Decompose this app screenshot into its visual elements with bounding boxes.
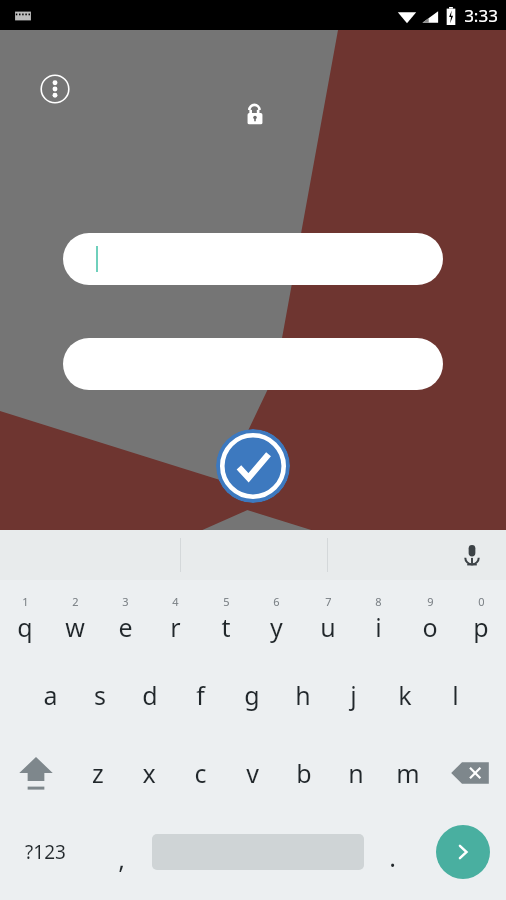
staticText: q bbox=[17, 610, 33, 644]
staticText: i bbox=[375, 610, 382, 644]
button[interactable]: Enter bbox=[436, 825, 490, 879]
button[interactable]: 7 bbox=[302, 582, 353, 656]
button[interactable]: . bbox=[364, 812, 420, 892]
button[interactable] bbox=[63, 338, 443, 390]
button[interactable]: 3 bbox=[100, 582, 150, 656]
button[interactable]: 0 bbox=[455, 582, 506, 656]
button[interactable]: a bbox=[25, 656, 75, 734]
button[interactable]: Voice input bbox=[452, 535, 492, 575]
staticText: w bbox=[65, 610, 85, 644]
staticText: s bbox=[94, 678, 106, 712]
button[interactable]: h bbox=[277, 656, 328, 734]
button[interactable]: Toggle password visibility bbox=[233, 92, 277, 136]
button[interactable] bbox=[63, 233, 443, 285]
staticText: 1 bbox=[22, 594, 29, 609]
staticText: j bbox=[350, 678, 357, 712]
button[interactable]: m bbox=[382, 734, 434, 812]
staticText: h bbox=[295, 678, 311, 712]
staticText: 9 bbox=[427, 594, 434, 609]
staticText: l bbox=[452, 678, 459, 712]
staticText: v bbox=[246, 756, 259, 790]
staticText: e bbox=[118, 610, 133, 644]
button[interactable]: 5 bbox=[200, 582, 251, 656]
button[interactable]: v bbox=[226, 734, 278, 812]
button[interactable]: Shift bbox=[0, 734, 72, 812]
staticText: g bbox=[244, 678, 260, 712]
button[interactable]: b bbox=[278, 734, 330, 812]
staticText: m bbox=[396, 756, 420, 790]
staticText: y bbox=[270, 610, 283, 644]
staticText: r bbox=[170, 610, 181, 644]
staticText: 3 bbox=[122, 594, 129, 609]
button[interactable]: s bbox=[75, 656, 125, 734]
staticText: 6 bbox=[273, 594, 280, 609]
button[interactable]: j bbox=[328, 656, 379, 734]
staticText: . bbox=[389, 840, 396, 874]
button[interactable]: , bbox=[90, 812, 152, 892]
staticText: 2 bbox=[72, 594, 79, 609]
staticText: p bbox=[473, 610, 489, 644]
button[interactable]: ?123 bbox=[0, 812, 90, 892]
staticText: d bbox=[142, 678, 158, 712]
button[interactable]: Backspace bbox=[434, 734, 506, 812]
staticText: c bbox=[194, 756, 207, 790]
button[interactable]: 9 bbox=[404, 582, 455, 656]
staticText: 3:33 bbox=[464, 4, 498, 27]
staticText: , bbox=[118, 842, 125, 876]
button[interactable]: f bbox=[175, 656, 226, 734]
button[interactable]: 8 bbox=[353, 582, 404, 656]
staticText: t bbox=[221, 610, 231, 644]
button[interactable]: 2 bbox=[50, 582, 100, 656]
button[interactable]: 4 bbox=[150, 582, 200, 656]
button[interactable]: x bbox=[123, 734, 174, 812]
staticText: 8 bbox=[375, 594, 382, 609]
staticText: k bbox=[398, 678, 412, 712]
button[interactable]: 6 bbox=[251, 582, 302, 656]
staticText: n bbox=[348, 756, 364, 790]
staticText: 5 bbox=[223, 594, 230, 609]
button[interactable]: z bbox=[72, 734, 123, 812]
button[interactable]: c bbox=[174, 734, 226, 812]
button[interactable]: d bbox=[125, 656, 175, 734]
button[interactable]: g bbox=[226, 656, 277, 734]
staticText: x bbox=[142, 756, 156, 790]
staticText: a bbox=[43, 678, 58, 712]
staticText: b bbox=[296, 756, 312, 790]
button[interactable]: n bbox=[330, 734, 382, 812]
button[interactable]: 1 bbox=[0, 582, 50, 656]
button[interactable]: More options bbox=[33, 67, 77, 111]
button[interactable]: k bbox=[379, 656, 430, 734]
staticText: f bbox=[196, 678, 205, 712]
button[interactable]: Submit bbox=[216, 429, 290, 503]
staticText: ?123 bbox=[25, 839, 66, 865]
staticText: o bbox=[422, 610, 438, 644]
staticText: 4 bbox=[172, 594, 179, 609]
staticText: z bbox=[92, 756, 104, 790]
staticText: 7 bbox=[325, 594, 332, 609]
staticText: u bbox=[320, 610, 336, 644]
button[interactable]: l bbox=[430, 656, 481, 734]
staticText: 0 bbox=[478, 594, 485, 609]
